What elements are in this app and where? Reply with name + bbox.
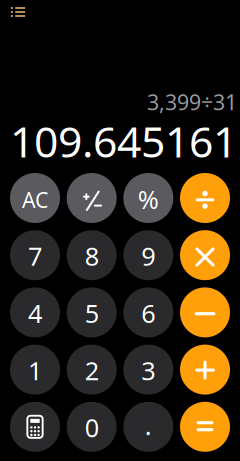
button[interactable]: Subtract [180,287,230,337]
button[interactable]: 0 [67,402,117,452]
staticText: 9 [141,239,155,273]
button[interactable]: Add [180,345,230,395]
staticText: 3 [141,353,155,387]
button[interactable]: 7 [10,230,60,280]
button[interactable]: 3 [123,345,173,395]
button[interactable]: 5 [67,287,117,337]
button[interactable]: AC [10,173,60,223]
staticText: AC [22,185,48,214]
button[interactable]: 9 [123,230,173,280]
button[interactable]: Divide [180,173,230,223]
button[interactable]: Calculator [10,402,60,452]
button[interactable]: Plus minus [67,173,117,223]
staticText: 7 [28,239,42,273]
button[interactable]: 6 [123,287,173,337]
staticText: 2 [85,353,99,387]
button[interactable]: % [123,173,173,223]
staticText: % [138,182,159,216]
staticText: 8 [85,239,99,273]
staticText: 3,399÷31 [147,88,237,116]
button[interactable]: History [2,0,34,27]
staticText: . [145,409,152,442]
button[interactable]: 1 [10,345,60,395]
button[interactable]: Equals [180,402,230,452]
button[interactable]: 4 [10,287,60,337]
button[interactable]: Multiply [180,230,230,280]
staticText: 1 [28,353,42,387]
staticText: 5 [85,296,99,330]
staticText: 0 [85,411,99,444]
button[interactable]: . [123,402,173,452]
button[interactable]: 2 [67,345,117,395]
staticText: 4 [28,296,42,330]
button[interactable]: 8 [67,230,117,280]
staticText: 109.645161 [10,113,237,169]
staticText: 6 [141,296,155,330]
